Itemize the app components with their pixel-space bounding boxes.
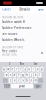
- button[interactable]: e: [11, 67, 14, 72]
- staticText: j: [31, 73, 32, 77]
- staticText: l: [39, 73, 40, 77]
- staticText: SUDDEN UPDATE: [2, 45, 23, 49]
- staticText: f: [18, 73, 19, 77]
- staticText: go: [36, 84, 40, 88]
- button[interactable]: f: [17, 73, 20, 77]
- staticText: s: [10, 73, 11, 77]
- button[interactable]: a: [5, 73, 8, 77]
- button[interactable]: m: [34, 78, 37, 83]
- staticText: h: [26, 73, 28, 77]
- staticText: Sudden Preferences: [2, 26, 31, 30]
- staticText: detail info: [2, 53, 17, 56]
- staticText: w: [7, 67, 9, 71]
- staticText: I: [9, 62, 10, 66]
- button[interactable]: n: [30, 78, 33, 83]
- staticText: Sudden switch B: [2, 20, 25, 24]
- button[interactable]: go: [34, 84, 42, 88]
- staticText: i: [33, 67, 34, 71]
- button[interactable]: r: [15, 67, 18, 72]
- button[interactable]: Ten routes: [0, 31, 46, 37]
- staticText: d: [14, 73, 16, 77]
- staticText: Details: [19, 8, 29, 11]
- staticText: Sudden Wheels: [2, 38, 24, 42]
- staticText: t: [20, 67, 21, 71]
- button[interactable]: l: [38, 73, 41, 77]
- button[interactable]: space: [11, 84, 33, 88]
- button[interactable]: t: [19, 67, 22, 72]
- button[interactable]: Free order: [0, 49, 46, 57]
- staticText: c: [18, 79, 19, 82]
- staticText: z: [10, 79, 11, 82]
- button[interactable]: k: [34, 73, 37, 77]
- staticText: x: [14, 79, 15, 82]
- staticText: 123: [4, 84, 10, 88]
- button[interactable]: Sudden Preferences: [0, 25, 46, 31]
- staticText: Save: [38, 8, 44, 11]
- button[interactable]: Cancel: [2, 6, 11, 13]
- staticText: m: [35, 79, 37, 82]
- button[interactable]: g: [21, 73, 25, 77]
- button[interactable]: y: [23, 67, 27, 72]
- button[interactable]: i: [32, 67, 35, 72]
- staticText: o: [37, 67, 39, 71]
- button[interactable]: v: [21, 78, 25, 83]
- staticText: n: [30, 79, 32, 82]
- staticText: SUDDEN SECTION: [2, 15, 23, 19]
- button[interactable]: j: [30, 73, 33, 77]
- staticText: v: [22, 79, 23, 82]
- button[interactable]: b: [26, 78, 29, 83]
- button[interactable]: w: [7, 67, 10, 72]
- button[interactable]: u: [28, 67, 31, 72]
- button[interactable]: Sudden switch B: [0, 19, 46, 25]
- button[interactable]: [38, 78, 43, 83]
- button[interactable]: s: [9, 73, 12, 77]
- staticText: Free order: [2, 49, 17, 53]
- staticText: Im: [34, 62, 37, 66]
- button[interactable]: c: [17, 78, 20, 83]
- staticText: q: [3, 67, 5, 71]
- staticText: Cancel: [2, 8, 11, 11]
- button[interactable]: p: [40, 67, 43, 72]
- button[interactable]: 123: [4, 84, 10, 88]
- button[interactable]: o: [36, 67, 39, 72]
- staticText: u: [28, 67, 30, 71]
- button[interactable]: h: [26, 73, 29, 77]
- staticText: y: [25, 67, 26, 71]
- button[interactable]: Save: [38, 6, 44, 13]
- staticText: The: [19, 62, 24, 66]
- staticText: a: [6, 73, 7, 77]
- button[interactable]: x: [13, 78, 16, 83]
- button[interactable]: q: [2, 67, 6, 72]
- staticText: p: [41, 67, 43, 71]
- button[interactable]: Sudden Wheels: [0, 37, 46, 43]
- button[interactable]: z: [9, 78, 12, 83]
- staticText: k: [35, 73, 36, 77]
- staticText: r: [16, 67, 17, 71]
- staticText: Ten routes: [2, 32, 17, 36]
- button[interactable]: d: [13, 73, 16, 77]
- staticText: g: [22, 73, 24, 77]
- staticText: space: [18, 84, 25, 88]
- button[interactable]: [3, 78, 8, 83]
- staticText: b: [26, 79, 28, 82]
- staticText: e: [11, 67, 13, 71]
